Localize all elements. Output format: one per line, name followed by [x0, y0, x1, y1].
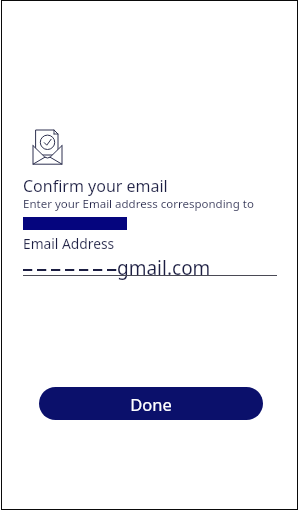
staticText: Confirm your email — [23, 175, 168, 197]
button[interactable]: Email Address field — [23, 254, 277, 282]
staticText: Enter your Email address corresponding t… — [23, 196, 254, 212]
button[interactable]: Done — [39, 387, 263, 420]
other: Email verified — [26, 128, 66, 165]
staticText: gmail.com — [117, 255, 211, 281]
staticText: Done — [130, 393, 172, 415]
staticText: Email Address — [23, 234, 115, 253]
